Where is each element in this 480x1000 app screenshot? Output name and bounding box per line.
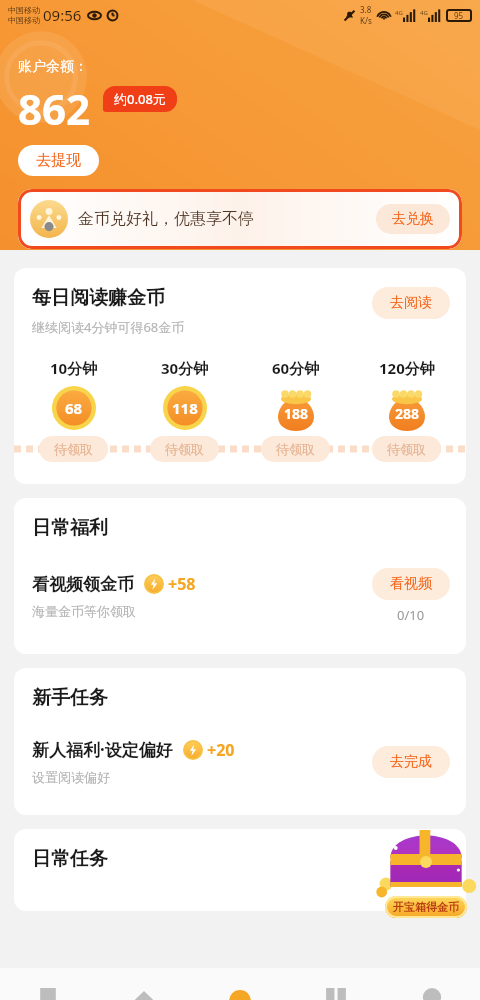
button[interactable]: 看视频: [372, 568, 450, 600]
button[interactable]: 我的: [384, 968, 480, 1000]
staticText: K/s: [360, 15, 372, 26]
button[interactable]: 去兑换: [376, 204, 450, 234]
staticText: 开宝箱得金币: [393, 900, 459, 914]
staticText: 中国移动: [8, 15, 40, 25]
staticText: 去完成: [390, 753, 432, 771]
staticText: 288: [395, 404, 420, 423]
staticText: 862: [18, 80, 91, 137]
button[interactable]: 去提现: [18, 145, 99, 176]
staticText: 去提现: [36, 151, 81, 170]
button[interactable]: 待领取: [39, 436, 108, 462]
button[interactable]: 开宝箱得金币: [372, 818, 480, 918]
staticText: 待领取: [276, 441, 315, 457]
staticText: 120分钟: [379, 358, 435, 378]
staticText: +58: [168, 573, 196, 595]
staticText: 日常任务: [32, 847, 108, 871]
staticText: 账户余额：: [18, 58, 88, 76]
button[interactable]: 书城: [288, 968, 384, 1000]
staticText: 60分钟: [272, 358, 320, 378]
staticText: 去阅读: [390, 294, 432, 312]
button[interactable]: 待领取: [372, 436, 441, 462]
button[interactable]: 去完成: [372, 746, 450, 778]
staticText: 日常福利: [32, 516, 108, 540]
staticText: 30分钟: [161, 358, 209, 378]
staticText: 待领取: [54, 441, 93, 457]
staticText: 中国移动: [8, 5, 40, 15]
staticText: 188: [284, 404, 309, 423]
button[interactable]: 待领取: [150, 436, 219, 462]
staticText: 新人福利·设定偏好: [32, 738, 173, 761]
staticText: 待领取: [165, 441, 204, 457]
staticText: 海量金币等你领取: [32, 603, 136, 619]
staticText: 看视频领金币: [32, 574, 134, 595]
button[interactable]: 待领取: [261, 436, 330, 462]
staticText: 继续阅读4分钟可得68金币: [32, 318, 185, 336]
staticText: 95: [454, 10, 464, 21]
staticText: 去兑换: [392, 210, 434, 228]
staticText: 看视频: [390, 575, 432, 593]
staticText: 待领取: [387, 441, 426, 457]
button[interactable]: 首页: [96, 968, 192, 1000]
staticText: 设置阅读偏好: [32, 769, 110, 785]
staticText: 68: [65, 398, 83, 418]
button[interactable]: 金币兑好礼，优惠享不停: [18, 189, 462, 249]
staticText: +20: [207, 739, 235, 761]
staticText: 约0.08元: [114, 90, 166, 108]
staticText: 118: [172, 398, 198, 418]
staticText: 09:56: [43, 5, 82, 25]
staticText: 每日阅读赚金币: [32, 286, 165, 310]
staticText: 金币兑好礼，优惠享不停: [78, 209, 254, 229]
staticText: 10分钟: [50, 358, 98, 378]
staticText: 3.8: [360, 4, 372, 15]
button[interactable]: 书架: [0, 968, 96, 1000]
staticText: 新手任务: [32, 686, 108, 710]
staticText: 4G: [395, 9, 403, 17]
button[interactable]: 去阅读: [372, 287, 450, 319]
staticText: 0/10: [397, 606, 425, 624]
button[interactable]: 福利: [192, 968, 288, 1000]
staticText: 4G: [420, 9, 428, 17]
